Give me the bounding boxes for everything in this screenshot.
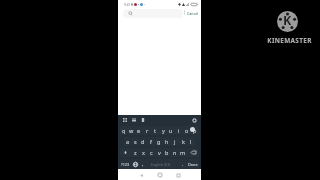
staticText: c xyxy=(150,149,153,156)
button[interactable]: n xyxy=(171,148,179,157)
staticText: g xyxy=(157,138,161,145)
button[interactable]: Done xyxy=(186,159,199,169)
staticText: n xyxy=(173,149,177,156)
button[interactable]: k xyxy=(179,137,187,146)
staticText: m xyxy=(180,149,186,156)
staticText: z xyxy=(134,149,137,156)
button[interactable]: e xyxy=(135,126,143,135)
staticText: r xyxy=(146,127,149,134)
button[interactable]: Home xyxy=(155,170,165,180)
staticText: l xyxy=(190,138,192,145)
staticText: q xyxy=(122,127,126,134)
button[interactable]: Back xyxy=(136,170,146,180)
staticText: f xyxy=(150,138,152,145)
button[interactable]: c xyxy=(147,148,155,157)
button[interactable]: l xyxy=(187,137,195,146)
button[interactable]: Cancel xyxy=(186,9,200,18)
staticText: Cancel xyxy=(187,11,199,16)
button[interactable]: z xyxy=(131,148,139,157)
staticText: o xyxy=(185,127,189,134)
staticText: d xyxy=(141,138,145,145)
staticText: u xyxy=(169,127,173,134)
staticText: t xyxy=(154,127,156,134)
staticText: w xyxy=(129,127,134,134)
button[interactable]: g xyxy=(155,137,163,146)
button[interactable]: i xyxy=(175,126,183,135)
button[interactable]: v xyxy=(155,148,163,157)
button[interactable]: r xyxy=(143,126,151,135)
staticText: 9:41 xyxy=(124,3,131,7)
button[interactable]: x xyxy=(139,148,147,157)
staticText: Done xyxy=(188,162,198,167)
button[interactable]: ?123 xyxy=(120,159,131,169)
button[interactable]: j xyxy=(171,137,179,146)
button[interactable]: Clipboard xyxy=(141,118,145,122)
staticText: v xyxy=(158,149,161,156)
button[interactable]: Backspace xyxy=(187,148,199,157)
button[interactable]: English (US) xyxy=(146,159,179,169)
staticText: e xyxy=(137,127,141,134)
staticText: a xyxy=(126,138,130,145)
button[interactable]: m xyxy=(179,148,187,157)
staticText: h xyxy=(165,138,169,145)
staticText: p xyxy=(193,127,197,134)
staticText: j xyxy=(174,138,176,145)
staticText: i xyxy=(178,127,180,134)
button[interactable]: , xyxy=(139,159,146,169)
button[interactable]: Change language xyxy=(131,159,139,169)
staticText: , xyxy=(142,161,144,168)
staticText: x xyxy=(142,149,145,156)
staticText: y xyxy=(162,127,165,134)
button[interactable]: Keyboard settings xyxy=(192,118,197,123)
button[interactable]: u xyxy=(167,126,175,135)
staticText: ?123 xyxy=(121,162,130,167)
staticText: s xyxy=(134,138,137,145)
staticText: K xyxy=(283,12,292,29)
button[interactable]: Shift xyxy=(120,148,131,157)
button[interactable]: w xyxy=(127,126,135,135)
button[interactable]: o xyxy=(183,126,191,135)
staticText: English (US) xyxy=(151,162,171,167)
button[interactable]: y xyxy=(159,126,167,135)
button[interactable]: h xyxy=(163,137,171,146)
staticText: b xyxy=(165,149,169,156)
staticText: . xyxy=(182,161,184,168)
staticText: k xyxy=(182,138,185,145)
staticText: KINEMASTER xyxy=(267,36,312,45)
button[interactable]: f xyxy=(147,137,155,146)
button[interactable]: q xyxy=(120,126,127,135)
button[interactable]: d xyxy=(139,137,147,146)
button[interactable]: t xyxy=(151,126,159,135)
button[interactable]: p xyxy=(191,126,199,135)
button[interactable]: . xyxy=(179,159,186,169)
button[interactable]: a xyxy=(124,137,131,146)
button[interactable]: s xyxy=(131,137,139,146)
button[interactable]: Translate xyxy=(132,118,136,122)
button[interactable]: Recents xyxy=(173,170,183,180)
button[interactable]: Stickers xyxy=(123,118,127,122)
button[interactable]: b xyxy=(163,148,171,157)
button[interactable] xyxy=(123,9,183,18)
